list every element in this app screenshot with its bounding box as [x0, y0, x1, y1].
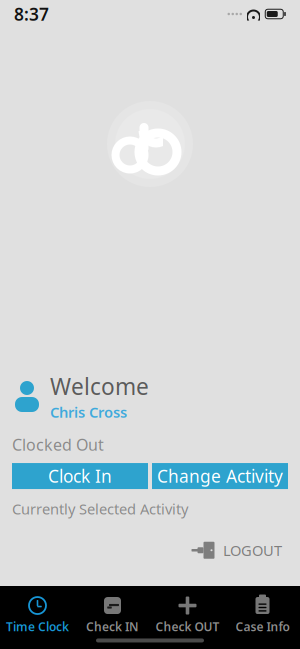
staticText: 8:37 — [14, 2, 49, 25]
staticText: Check OUT — [155, 618, 219, 634]
button[interactable]: Check OUT — [150, 589, 225, 638]
staticText: Time Clock — [6, 618, 69, 634]
staticText: Currently Selected Activity — [12, 499, 188, 518]
button[interactable]: Time Clock — [0, 589, 75, 638]
staticText: Change Activity — [157, 464, 283, 487]
button[interactable]: LOGOUT — [185, 536, 288, 564]
button[interactable]: Clock In — [12, 463, 148, 489]
button[interactable]: Change Activity — [152, 463, 288, 489]
staticText: Clocked Out — [12, 434, 104, 455]
staticText: Clock In — [48, 464, 112, 487]
staticText: Chris Cross — [50, 402, 127, 422]
staticText: Welcome — [50, 371, 149, 401]
button[interactable]: Check IN — [75, 589, 150, 638]
staticText: LOGOUT — [223, 540, 282, 560]
button[interactable]: Case Info — [225, 589, 300, 638]
staticText: Check IN — [86, 618, 139, 634]
staticText: Case Info — [235, 618, 289, 634]
